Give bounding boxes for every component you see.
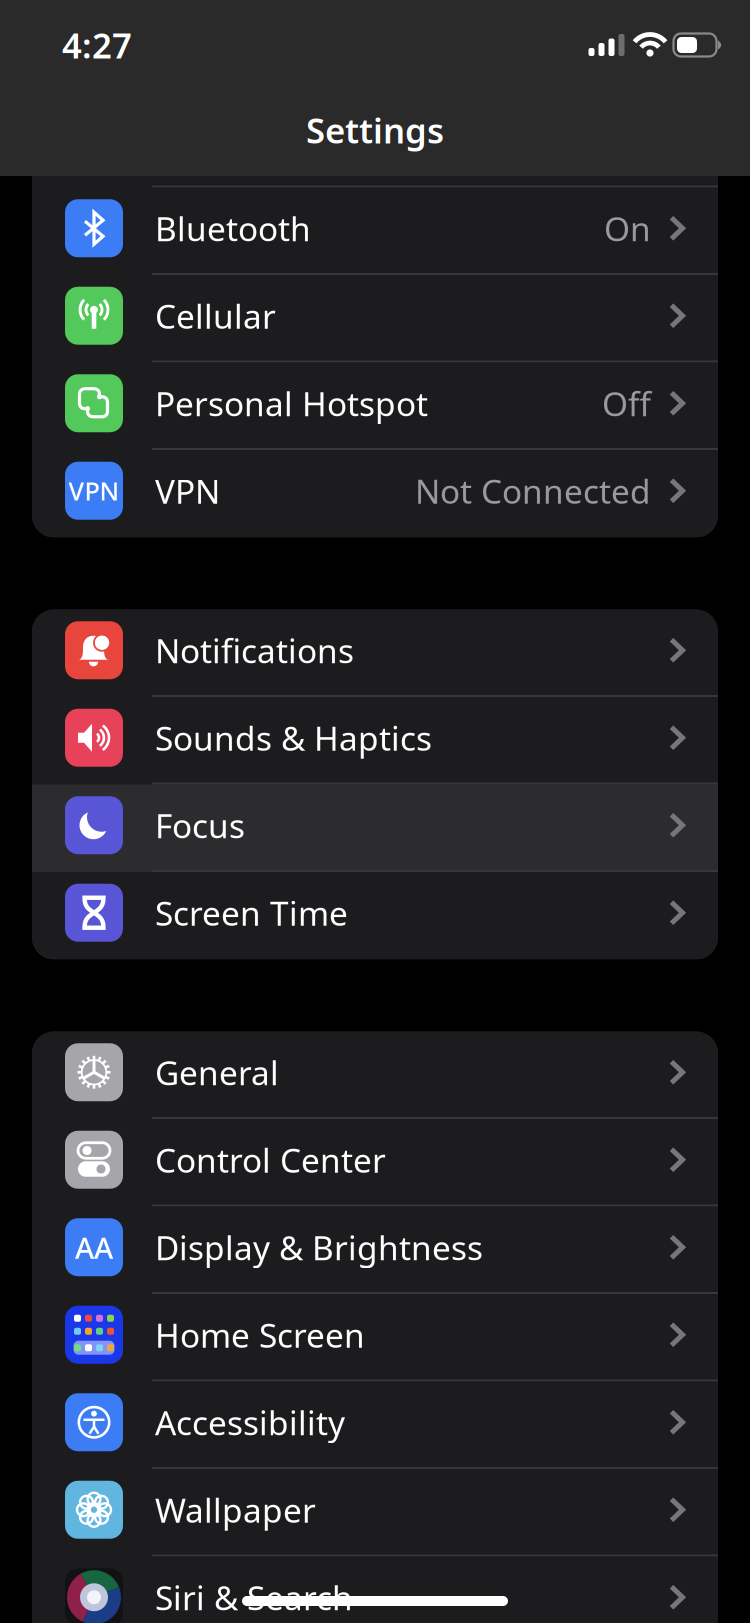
button[interactable]: Screen Time — [32, 872, 718, 959]
staticText: Focus — [155, 803, 245, 847]
button[interactable]: Personal Hotspot — [32, 362, 718, 450]
staticText: 4:27 — [62, 22, 132, 68]
button[interactable]: General — [32, 1031, 718, 1119]
button[interactable]: Wallpaper — [32, 1469, 718, 1556]
staticText: Bluetooth — [155, 206, 311, 250]
button[interactable]: Wi-Fi — [32, 100, 718, 187]
staticText: Off — [602, 381, 651, 425]
staticText: General — [155, 1050, 279, 1094]
staticText: Siri & Search — [155, 1575, 353, 1619]
staticText: AA — [75, 1228, 113, 1267]
staticText: Display & Brightness — [155, 1225, 483, 1269]
button[interactable]: VPN — [32, 450, 718, 537]
staticText: VPN — [155, 469, 220, 513]
staticText: Screen Time — [155, 891, 348, 935]
staticText: Wallpaper — [155, 1488, 316, 1532]
staticText: Personal Hotspot — [155, 381, 428, 425]
button[interactable]: AA — [32, 1206, 718, 1294]
staticText: Home Screen — [155, 1313, 365, 1357]
staticText: Control Center — [155, 1138, 386, 1182]
button[interactable]: Cellular — [32, 275, 718, 362]
button[interactable]: Focus — [32, 784, 718, 872]
staticText: Sounds & Haptics — [155, 716, 432, 760]
staticText: On — [604, 206, 651, 250]
staticText: Not Connected — [415, 469, 651, 513]
button[interactable]: Home Screen — [32, 1294, 718, 1381]
staticText: Notifications — [155, 628, 354, 672]
staticText: Cellular — [155, 294, 276, 338]
staticText: Settings — [306, 107, 444, 153]
button[interactable]: Notifications — [32, 609, 718, 697]
button[interactable]: Accessibility — [32, 1381, 718, 1469]
button[interactable]: Siri & Search — [32, 1556, 718, 1623]
button[interactable]: Bluetooth — [32, 187, 718, 275]
button[interactable]: Control Center — [32, 1119, 718, 1206]
staticText: VPN — [68, 474, 119, 507]
button[interactable]: Sounds & Haptics — [32, 697, 718, 784]
staticText: Accessibility — [155, 1400, 345, 1444]
